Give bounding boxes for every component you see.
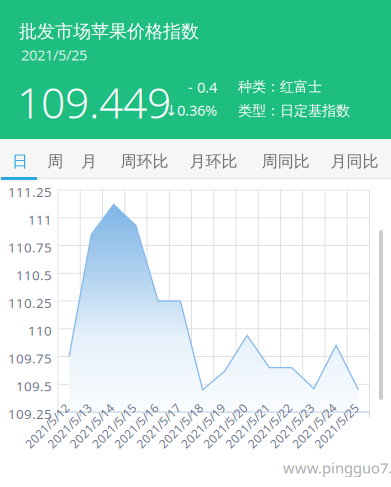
staticText: www.pingguo7.cn (283, 458, 391, 477)
staticText: 月 (81, 152, 97, 171)
staticText: 2021/5/17 (129, 416, 186, 432)
button[interactable]: 周同比 (256, 139, 315, 179)
staticText: 月同比 (331, 152, 379, 171)
staticText: 2021/5/23 (263, 416, 320, 432)
staticText: 批发市场苹果价格指数 (19, 20, 199, 43)
staticText: 110 (28, 322, 52, 339)
button[interactable]: 周 (43, 139, 67, 179)
staticText: 2021/5/25 (307, 416, 364, 432)
staticText: - 0.4 (188, 77, 217, 97)
staticText: 2021/5/24 (285, 416, 342, 432)
staticText: 110.25 (8, 294, 52, 312)
staticText: 110.75 (8, 238, 52, 256)
staticText: 2021/5/20 (196, 416, 253, 432)
staticText: 2021/5/25 (21, 45, 87, 64)
staticText: 110.5 (16, 266, 52, 284)
staticText: 2021/5/19 (174, 416, 231, 432)
staticText: 日 (12, 152, 28, 171)
staticText: 111 (28, 211, 52, 228)
staticText: 周 (47, 152, 63, 171)
button[interactable]: 周环比 (115, 139, 174, 179)
staticText: 2021/5/22 (241, 416, 298, 432)
staticText: 111.25 (8, 183, 52, 201)
staticText: 2021/5/15 (85, 416, 142, 432)
button[interactable]: 月环比 (184, 139, 243, 179)
staticText: 2021/5/16 (107, 416, 164, 432)
staticText: 周同比 (262, 152, 310, 171)
staticText: 2021/5/12 (18, 416, 75, 432)
staticText: 类型：日定基指数 (238, 102, 350, 120)
staticText: 2021/5/13 (40, 416, 97, 432)
staticText: 109.75 (8, 349, 52, 367)
staticText: 109.449 (17, 73, 171, 131)
button[interactable]: 月 (77, 139, 101, 179)
staticText: 周环比 (120, 152, 168, 171)
staticText: 109.5 (16, 377, 52, 395)
staticText: 2021/5/14 (63, 416, 120, 432)
staticText: 109.25 (8, 405, 52, 423)
button[interactable]: 月同比 (325, 139, 384, 179)
staticText: 2021/5/21 (218, 416, 275, 432)
staticText: 月环比 (190, 152, 238, 171)
staticText: 2021/5/18 (152, 416, 209, 432)
staticText: 种类：红富士 (238, 78, 322, 96)
staticText: ↓0.36% (165, 100, 217, 120)
button[interactable]: 日 (8, 139, 32, 179)
